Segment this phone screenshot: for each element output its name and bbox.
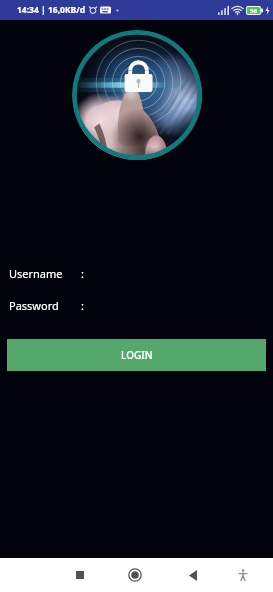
button[interactable]: Recent apps — [65, 560, 95, 590]
staticText: : — [81, 266, 84, 281]
button[interactable]: Accessibility — [228, 560, 258, 590]
staticText: LOGIN — [121, 348, 153, 362]
button[interactable]: LOGIN — [7, 339, 266, 371]
staticText: 56 — [250, 7, 257, 15]
button[interactable]: Home — [120, 560, 150, 590]
staticText: Password — [9, 298, 59, 313]
button[interactable]: Username — [0, 264, 273, 282]
button[interactable]: Password — [0, 296, 273, 314]
staticText: Username — [9, 266, 63, 281]
staticText: 14:34 | 16,0KB/d — [17, 4, 86, 16]
staticText: : — [81, 298, 84, 313]
button[interactable]: Back — [174, 560, 204, 590]
